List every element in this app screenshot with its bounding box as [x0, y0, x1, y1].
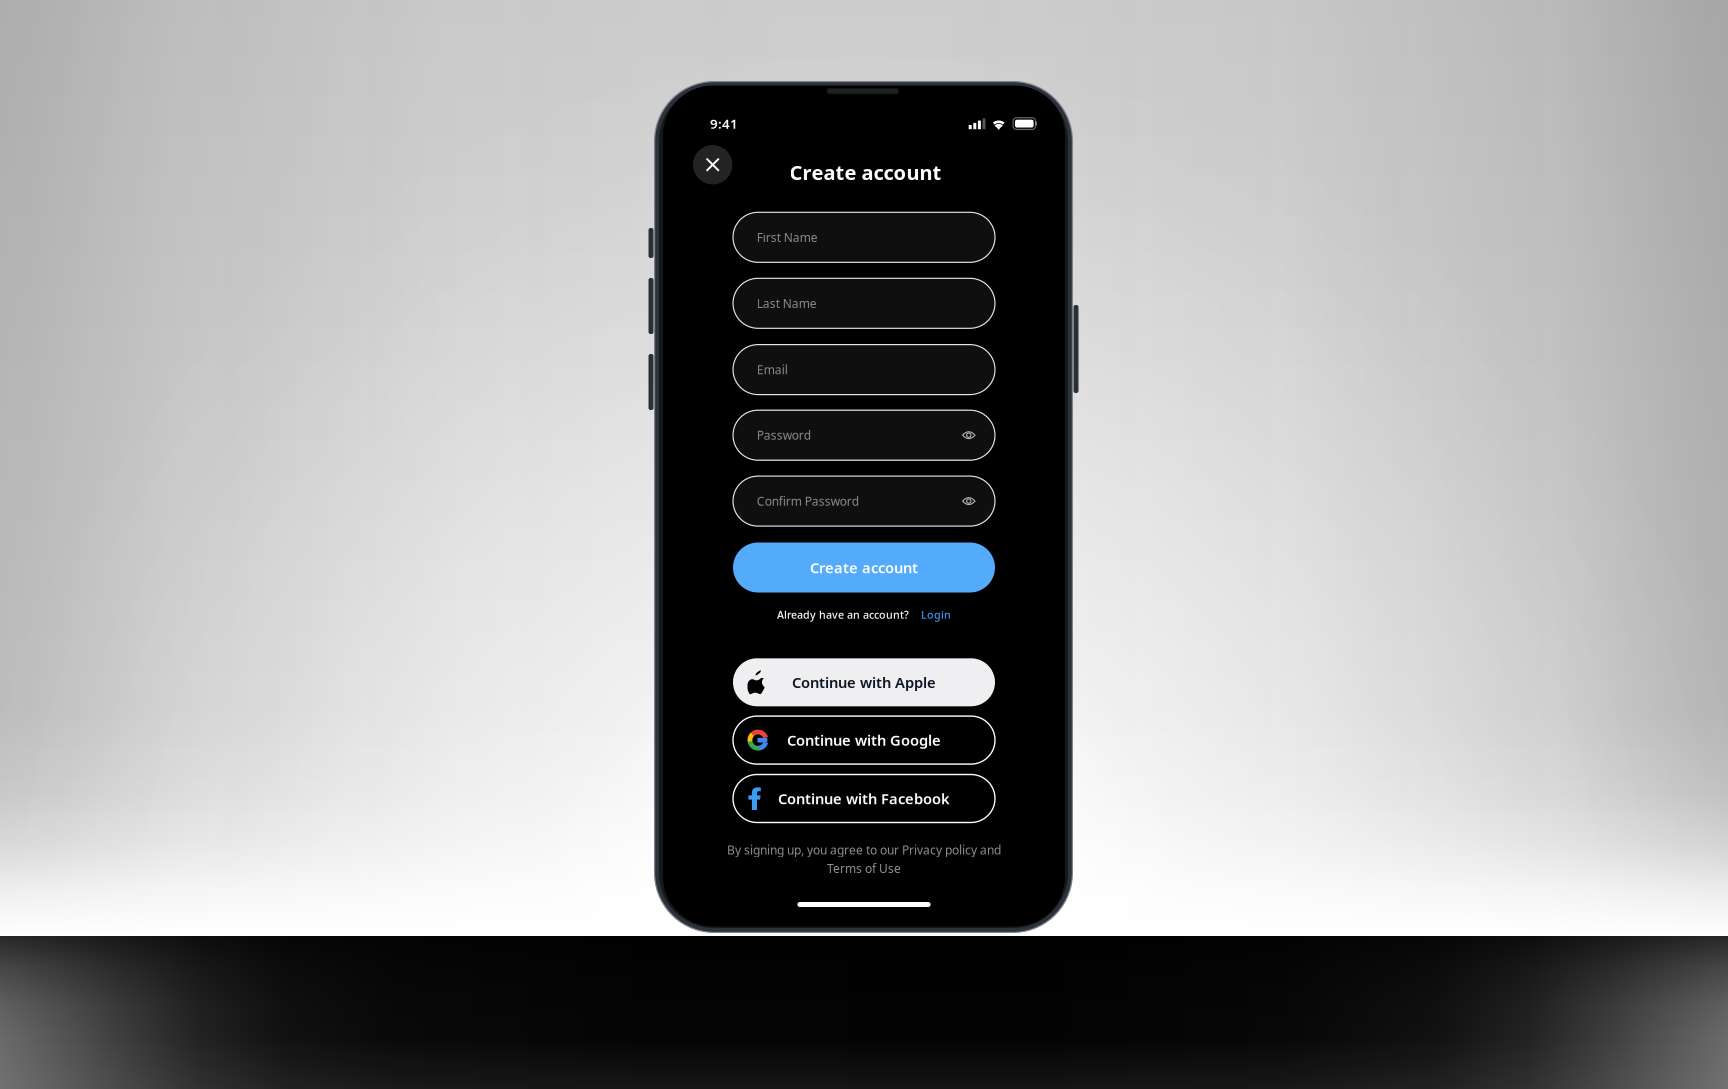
button[interactable]: Continue with Google	[733, 716, 995, 764]
staticText: Continue with Facebook	[778, 789, 950, 808]
staticText: Password	[757, 427, 811, 443]
button[interactable]: Password	[733, 410, 995, 460]
button[interactable]: Last Name	[733, 278, 995, 328]
staticText: By signing up, you agree to our Privacy …	[727, 842, 1001, 858]
staticText: Email	[757, 362, 788, 377]
staticText: Continue with Apple	[792, 673, 936, 692]
staticText: Continue with Google	[787, 730, 941, 750]
button[interactable]: Continue with Facebook	[733, 774, 995, 822]
button[interactable]: Create account	[733, 542, 995, 592]
staticText: Terms of Use	[827, 860, 901, 876]
button[interactable]: Confirm Password	[733, 476, 995, 526]
staticText: Create account	[810, 558, 918, 577]
button[interactable]: Continue with Apple	[733, 658, 995, 706]
staticText: Create account	[789, 159, 941, 186]
staticText: Login	[921, 608, 951, 622]
staticText: Already have an account?	[777, 608, 909, 622]
button[interactable]: Email	[733, 345, 995, 395]
button[interactable]: Login	[921, 608, 951, 622]
staticText: Confirm Password	[757, 493, 859, 509]
staticText: First Name	[757, 229, 818, 245]
button[interactable]: First Name	[733, 212, 995, 262]
staticText: Last Name	[757, 295, 817, 311]
button[interactable]: Close	[693, 145, 732, 184]
staticText: 9:41	[710, 115, 738, 132]
